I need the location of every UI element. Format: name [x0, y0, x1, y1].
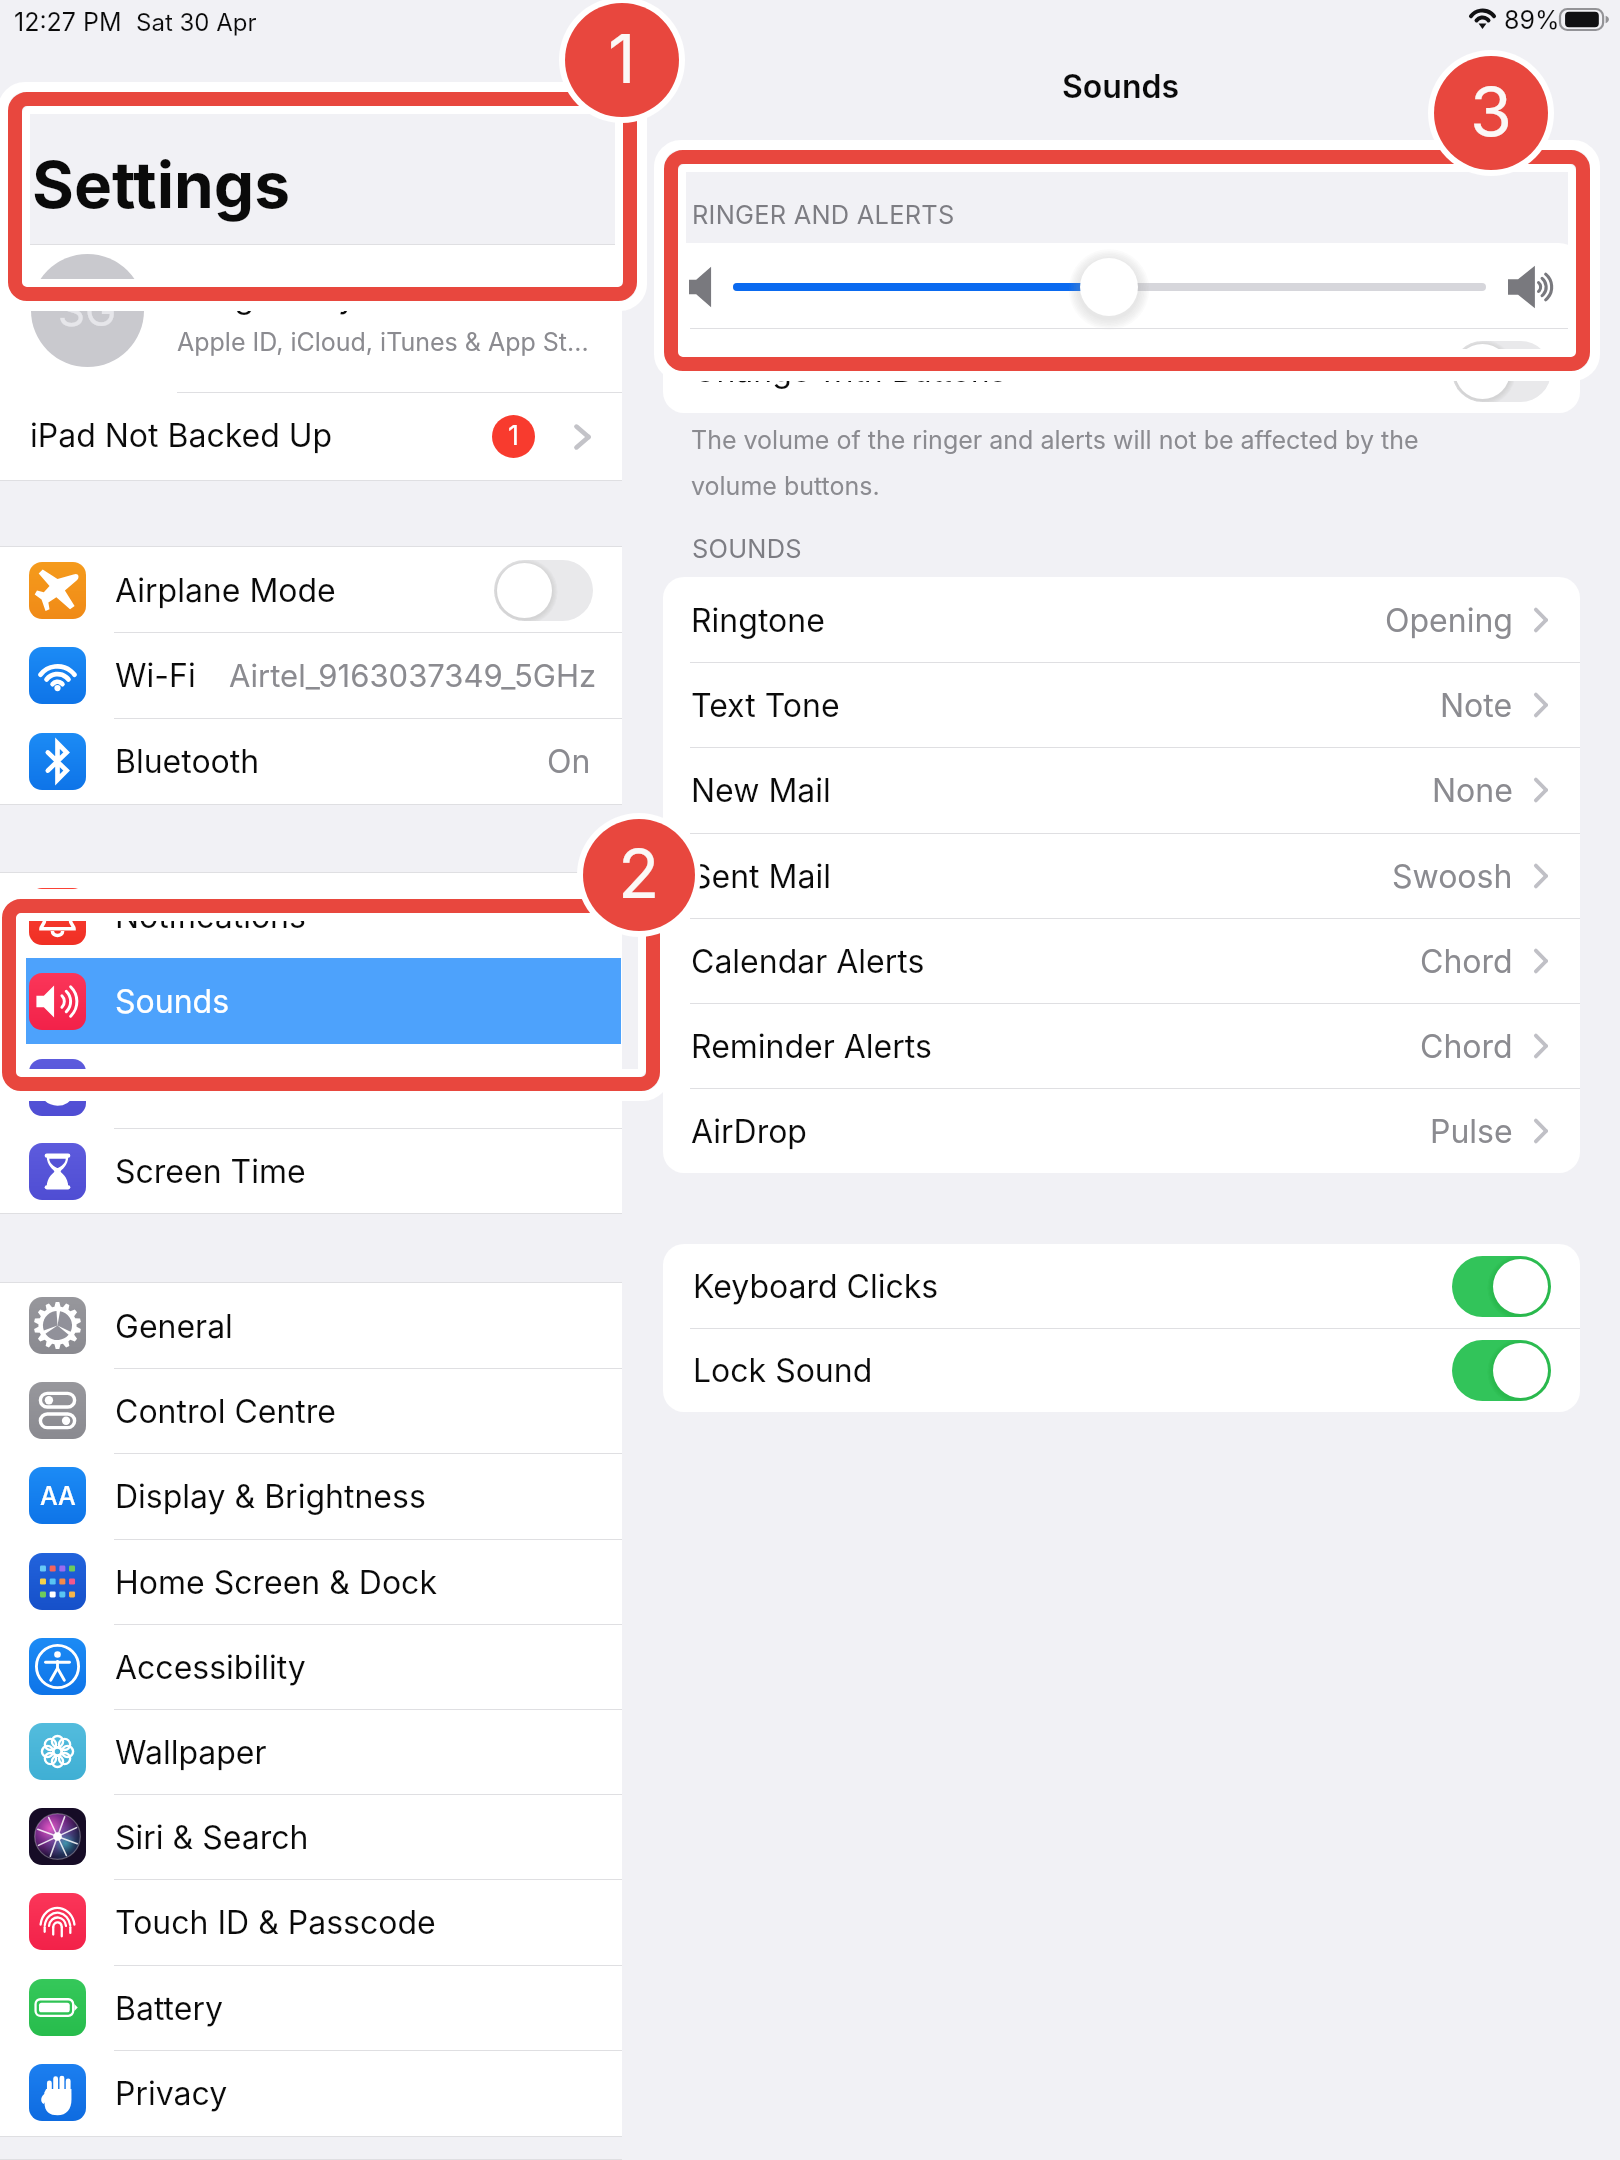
staticText: New Mail [691, 771, 831, 810]
staticText: Settings [32, 146, 291, 223]
staticText: Screen Time [115, 1152, 306, 1191]
staticText: Sangita Roy [177, 277, 357, 316]
staticText: SOUNDS [692, 533, 802, 564]
button[interactable]: Airplane Mode [0, 547, 622, 633]
button[interactable]: Home Screen & Dock [0, 1539, 622, 1624]
staticText: General [115, 1307, 233, 1346]
staticText: Text Tone [691, 686, 840, 725]
staticText: Privacy [115, 2074, 228, 2113]
button[interactable]: AirDrop [663, 1088, 1580, 1173]
button[interactable]: Bluetooth [0, 718, 622, 804]
button[interactable]: Wi-Fi [0, 632, 622, 718]
button[interactable]: Ringer volume [1080, 258, 1138, 316]
staticText: 2 [618, 832, 660, 914]
button[interactable]: SG [0, 245, 622, 392]
staticText: 1 [508, 419, 519, 452]
staticText: Siri & Search [115, 1818, 309, 1857]
staticText: 1 [608, 17, 636, 99]
button[interactable]: Reminder Alerts [663, 1003, 1580, 1088]
button[interactable]: Ringtone [663, 577, 1580, 662]
staticText: Wi-Fi [115, 656, 196, 695]
staticText: Chord [1420, 942, 1513, 981]
button[interactable]: Change with Buttons [1452, 341, 1551, 402]
staticText: Sounds [115, 982, 230, 1021]
button[interactable]: Screen Time [0, 1128, 622, 1214]
staticText: Change with Buttons [693, 351, 1007, 390]
button[interactable]: Text Tone [663, 662, 1580, 747]
staticText: Bluetooth [115, 742, 260, 781]
staticText: The volume of the ringer and alerts will… [691, 425, 1419, 455]
button[interactable]: Sounds [0, 958, 622, 1044]
button[interactable]: Airplane Mode [494, 560, 593, 621]
button[interactable]: Control Centre [0, 1368, 622, 1453]
staticText: Keyboard Clicks [693, 1267, 939, 1306]
staticText: Do Not Disturb [115, 1068, 339, 1107]
button[interactable]: Lock Sound [1452, 1340, 1551, 1401]
button[interactable]: Change with Buttons [663, 328, 1580, 413]
staticText: volume buttons. [691, 471, 880, 501]
button[interactable]: Battery [0, 1965, 622, 2050]
button[interactable]: General [0, 1283, 622, 1368]
staticText: Chord [1420, 1027, 1513, 1066]
button[interactable]: Sent Mail [663, 833, 1580, 918]
staticText: Note [1440, 686, 1513, 725]
button[interactable]: AA [0, 1453, 622, 1538]
button[interactable]: Keyboard Clicks [663, 1244, 1580, 1328]
button[interactable]: Touch ID & Passcode [0, 1879, 622, 1964]
staticText: Sounds [1062, 67, 1180, 106]
staticText: Accessibility [115, 1648, 306, 1687]
staticText: iPad Not Backed Up [30, 416, 333, 455]
staticText: AirDrop [691, 1112, 807, 1151]
staticText: 12:27 PM [14, 7, 122, 37]
button[interactable]: Siri & Search [0, 1794, 622, 1879]
staticText: Display & Brightness [115, 1477, 426, 1516]
staticText: Apple ID, iCloud, iTunes & App St... [177, 327, 589, 357]
staticText: None [1432, 771, 1513, 810]
staticText: Reminder Alerts [691, 1027, 932, 1066]
staticText: Pulse [1430, 1112, 1513, 1151]
staticText: Calendar Alerts [691, 942, 925, 981]
button[interactable]: New Mail [663, 747, 1580, 832]
staticText: Battery [115, 1989, 223, 2028]
staticText: Sat 30 Apr [136, 8, 257, 37]
staticText: Home Screen & Dock [115, 1563, 437, 1602]
button[interactable]: Do Not Disturb [0, 1044, 622, 1130]
staticText: Airplane Mode [115, 571, 336, 610]
button[interactable]: iPad Not Backed Up [0, 393, 622, 480]
staticText: 3 [1470, 70, 1513, 152]
button[interactable]: Accessibility [0, 1624, 622, 1709]
button[interactable]: Wallpaper [0, 1709, 622, 1794]
staticText: AA [40, 1481, 76, 1511]
staticText: Touch ID & Passcode [115, 1903, 436, 1942]
button[interactable]: Keyboard Clicks [1452, 1256, 1551, 1317]
button[interactable]: Notifications [0, 873, 622, 959]
staticText: Lock Sound [693, 1351, 873, 1390]
staticText: Opening [1385, 601, 1513, 640]
staticText: SG [58, 285, 117, 336]
button[interactable]: Lock Sound [663, 1328, 1580, 1412]
staticText: Control Centre [115, 1392, 336, 1431]
staticText: Notifications [115, 897, 306, 936]
staticText: 89% [1504, 5, 1560, 35]
button[interactable]: Privacy [0, 2050, 622, 2135]
staticText: Sent Mail [691, 857, 831, 896]
button[interactable]: Calendar Alerts [663, 918, 1580, 1003]
staticText: Ringtone [691, 601, 825, 640]
staticText: Airtel_9163037349_5GHz [229, 657, 597, 695]
staticText: On [547, 742, 591, 781]
staticText: RINGER AND ALERTS [692, 199, 955, 230]
staticText: Wallpaper [115, 1733, 267, 1772]
staticText: Swoosh [1392, 857, 1513, 896]
